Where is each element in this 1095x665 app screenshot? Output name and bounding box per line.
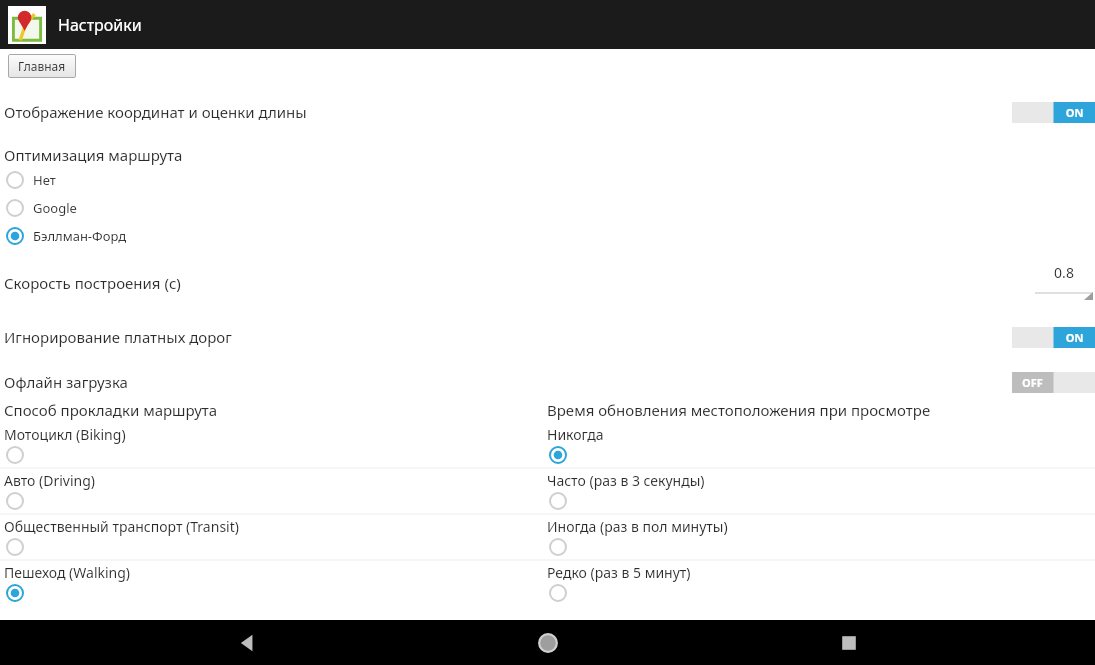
staticText: Скорость построения (с) xyxy=(4,273,181,293)
staticText: Игнорирование платных дорог xyxy=(4,327,232,347)
staticText: Авто (Driving) xyxy=(4,471,96,490)
staticText: Настройки xyxy=(58,14,142,36)
staticText: Главная xyxy=(18,58,66,74)
staticText: Отображение координат и оценки длины xyxy=(4,102,307,122)
button[interactable]: Включено xyxy=(1012,327,1095,348)
button[interactable]: Бэллман-Форд xyxy=(0,227,1095,245)
button[interactable]: Общественный транспорт (Transit) xyxy=(0,515,543,560)
staticText: ON xyxy=(1054,330,1095,345)
staticText: Оптимизация маршрута xyxy=(4,145,183,165)
button[interactable]: Включено xyxy=(1012,102,1095,123)
button[interactable]: Иногда (раз в пол минуты) xyxy=(543,515,1095,560)
staticText: Часто (раз в 3 секунды) xyxy=(547,471,705,490)
staticText: Google xyxy=(33,199,77,217)
staticText: Редко (раз в 5 минут) xyxy=(547,563,691,582)
staticText: Бэллман-Форд xyxy=(33,227,127,245)
staticText: Способ прокладки маршрута xyxy=(4,400,218,420)
staticText: OFF xyxy=(1012,375,1053,390)
button[interactable]: 0.8 xyxy=(1035,263,1093,303)
button[interactable]: Авто (Driving) xyxy=(0,469,543,514)
button[interactable]: Назад xyxy=(192,620,302,665)
staticText: Никогда xyxy=(547,425,604,444)
staticText: Мотоцикл (Biking) xyxy=(4,425,126,444)
button[interactable]: Никогда xyxy=(543,423,1095,468)
staticText: Время обновления местоположения при прос… xyxy=(547,400,931,420)
button[interactable]: Часто (раз в 3 секунды) xyxy=(543,469,1095,514)
staticText: Нет xyxy=(33,171,56,189)
staticText: 0.8 xyxy=(1035,263,1093,282)
button[interactable]: Выключено xyxy=(1012,372,1095,393)
staticText: Иногда (раз в пол минуты) xyxy=(547,517,728,536)
button[interactable]: Редко (раз в 5 минут) xyxy=(543,561,1095,606)
staticText: Общественный транспорт (Transit) xyxy=(4,517,239,536)
button[interactable]: Google xyxy=(0,199,1095,217)
button[interactable]: Нет xyxy=(0,171,1095,189)
button[interactable]: Пешеход (Walking) xyxy=(0,561,543,606)
staticText: ON xyxy=(1054,105,1095,120)
button[interactable]: Главный экран xyxy=(493,620,603,665)
button[interactable]: Главная xyxy=(8,54,76,78)
staticText: Офлайн загрузка xyxy=(4,372,128,392)
button[interactable]: Недавние xyxy=(794,620,904,665)
staticText: Пешеход (Walking) xyxy=(4,563,131,582)
button[interactable]: Мотоцикл (Biking) xyxy=(0,423,543,468)
